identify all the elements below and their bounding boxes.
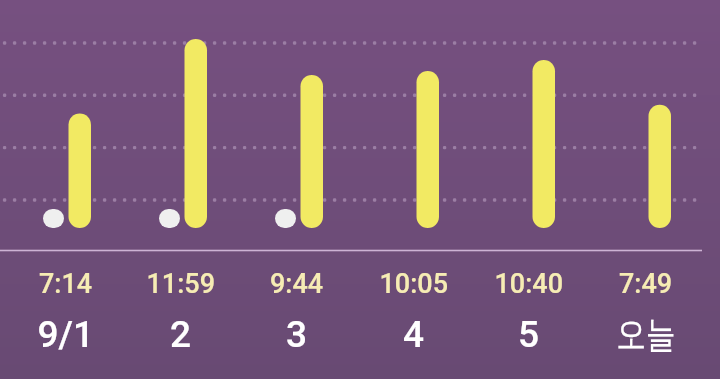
button[interactable]: 5 10:40: [472, 0, 586, 379]
button[interactable]: 4 10:05: [357, 0, 471, 379]
button[interactable]: 오늘 7:49: [589, 0, 703, 379]
button[interactable]: 2 11:59: [124, 0, 238, 379]
button[interactable]: 9/1 7:14: [9, 0, 123, 379]
button[interactable]: 3 9:44: [240, 0, 354, 379]
